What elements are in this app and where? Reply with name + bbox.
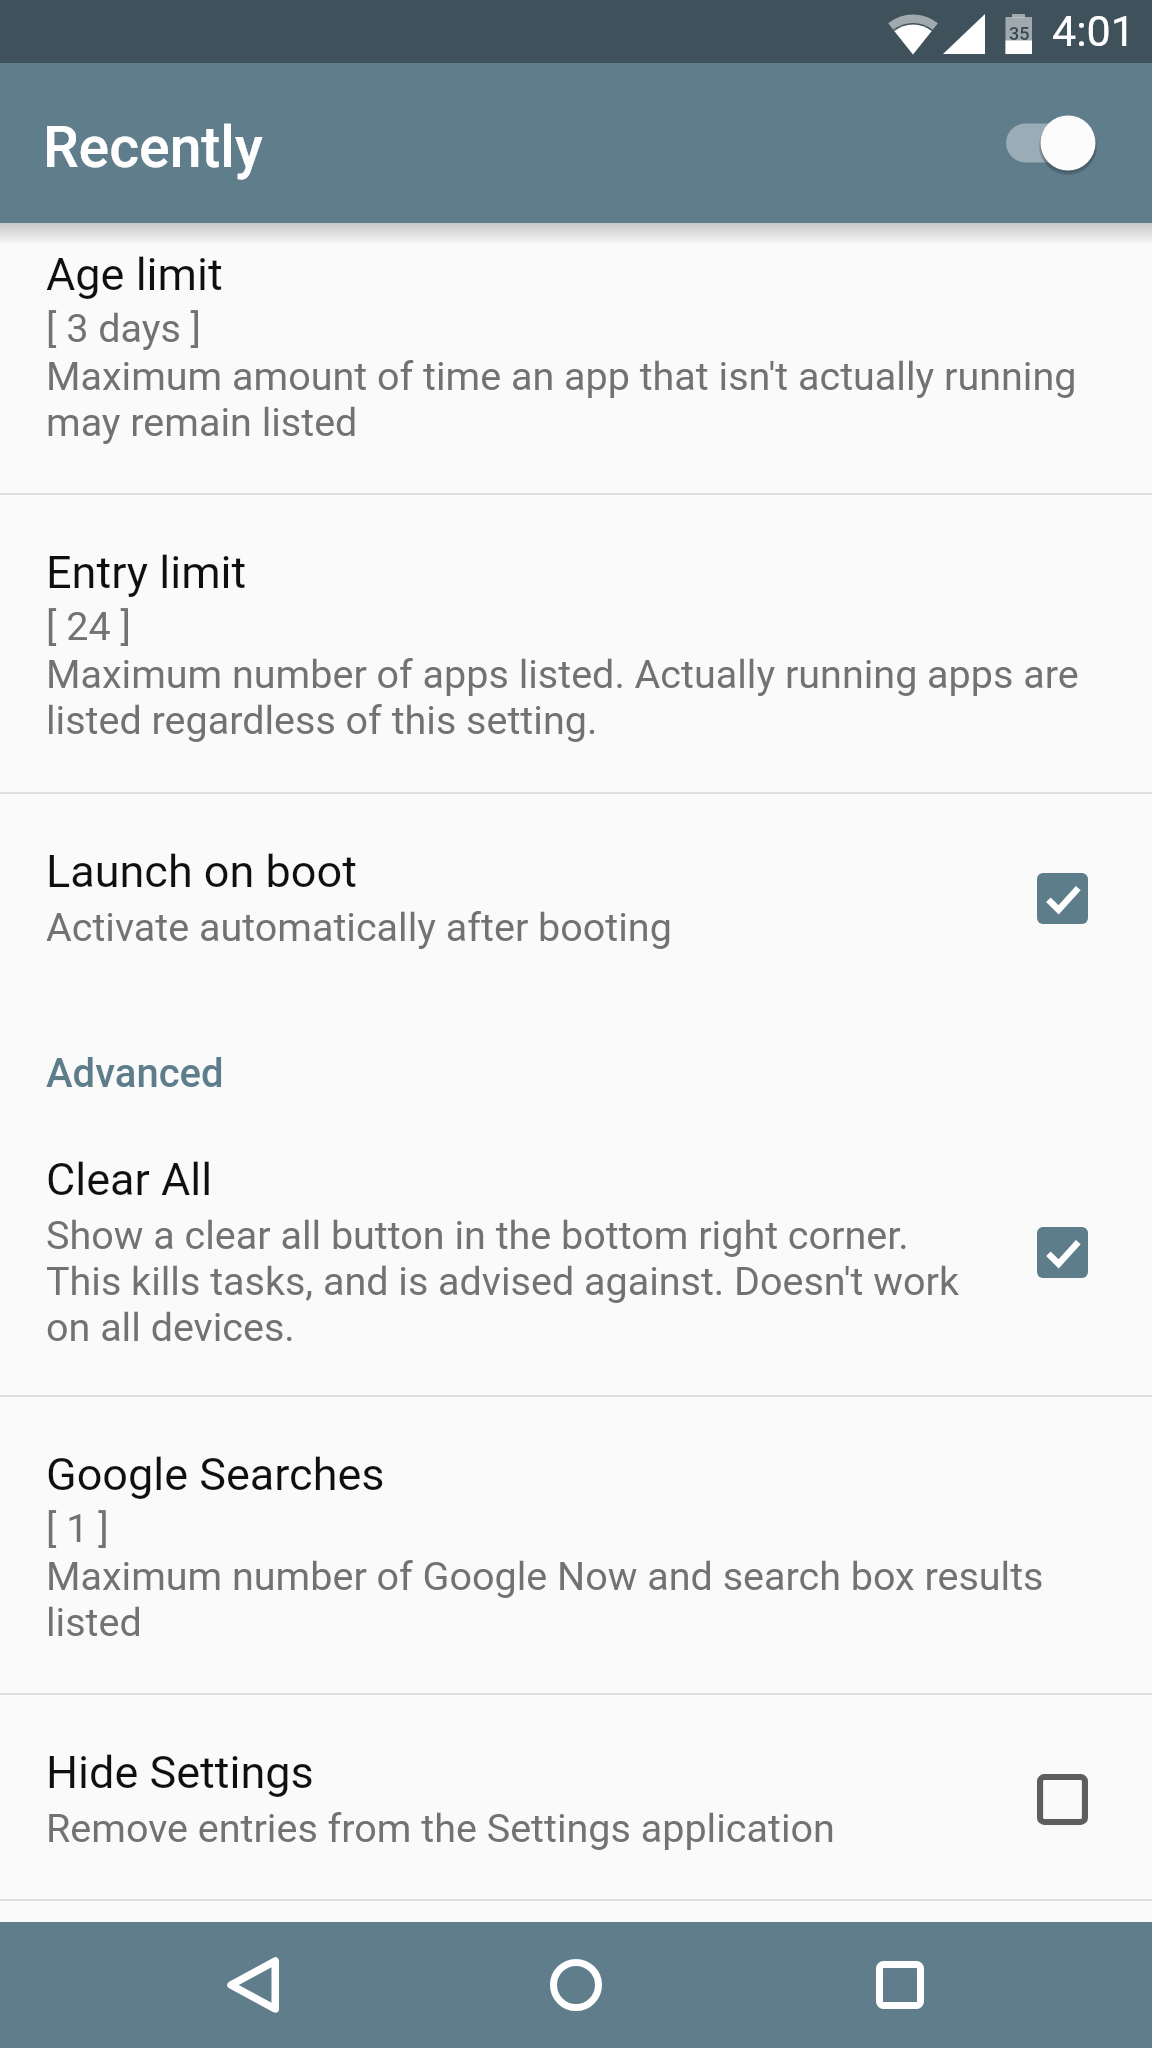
staticText: Entry limit [46,546,247,599]
button[interactable]: Google Searches [0,1397,1152,1693]
staticText: Remove entries from the Settings applica… [46,1806,835,1852]
button[interactable]: Hide Settings [0,1695,1152,1899]
button[interactable]: Enable Recently [1004,95,1134,191]
button[interactable]: Age limit [0,223,1152,493]
staticText: Google Searches [46,1448,385,1501]
button[interactable]: Recent apps [837,1922,963,2048]
staticText: [ 3 days ] [46,306,202,352]
button[interactable]: Launch on boot [0,794,1152,1006]
button[interactable]: Enabled, tap to disable [1014,850,1110,946]
staticText: [ 24 ] [46,604,131,650]
staticText: Activate automatically after booting [46,905,672,951]
button[interactable]: Enabled, tap to disable [1014,1204,1110,1300]
button[interactable]: Home [513,1922,639,2048]
staticText: Age limit [46,248,223,301]
staticText: Clear All [46,1153,213,1206]
button[interactable]: Back [189,1922,315,2048]
staticText: 35 [1009,23,1030,44]
button[interactable]: Disabled, tap to enable [1014,1751,1110,1847]
staticText: Maximum number of apps listed. Actually … [46,652,1079,744]
staticText: Maximum number of Google Now and search … [46,1554,1044,1646]
button[interactable]: Entry limit [0,495,1152,792]
staticText: Recently [43,114,263,181]
staticText: [ 1 ] [46,1506,109,1552]
staticText: Hide Settings [46,1746,314,1799]
staticText: 4:01 [1052,6,1135,56]
staticText: Maximum amount of time an app that isn't… [46,354,1077,446]
staticText: Advanced [46,1050,224,1097]
staticText: Show a clear all button in the bottom ri… [46,1213,959,1351]
staticText: Launch on boot [46,845,357,898]
button[interactable]: Clear All [0,1102,1152,1395]
